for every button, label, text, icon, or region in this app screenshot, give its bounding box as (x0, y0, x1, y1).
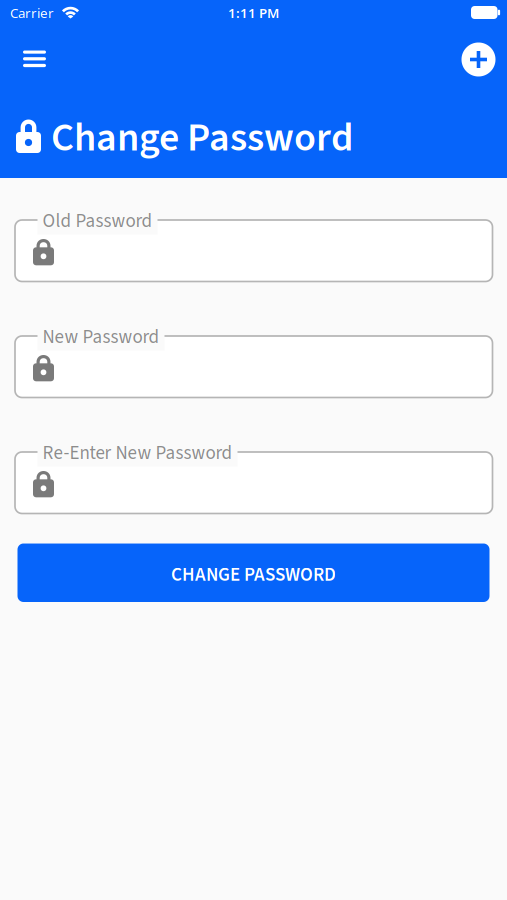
button[interactable] (15, 220, 492, 281)
staticText: Change Password (51, 109, 354, 166)
button[interactable] (15, 452, 492, 513)
button[interactable]: CHANGE PASSWORD (17, 543, 489, 602)
staticText: Old Password (42, 208, 152, 235)
staticText: CHANGE PASSWORD (171, 561, 336, 588)
staticText: New Password (42, 324, 159, 351)
staticText: Carrier (10, 4, 54, 22)
button[interactable] (461, 42, 495, 76)
staticText: 1:11 PM (228, 4, 279, 22)
button[interactable] (17, 44, 52, 73)
staticText: Re-Enter New Password (42, 440, 232, 467)
button[interactable] (15, 336, 492, 397)
